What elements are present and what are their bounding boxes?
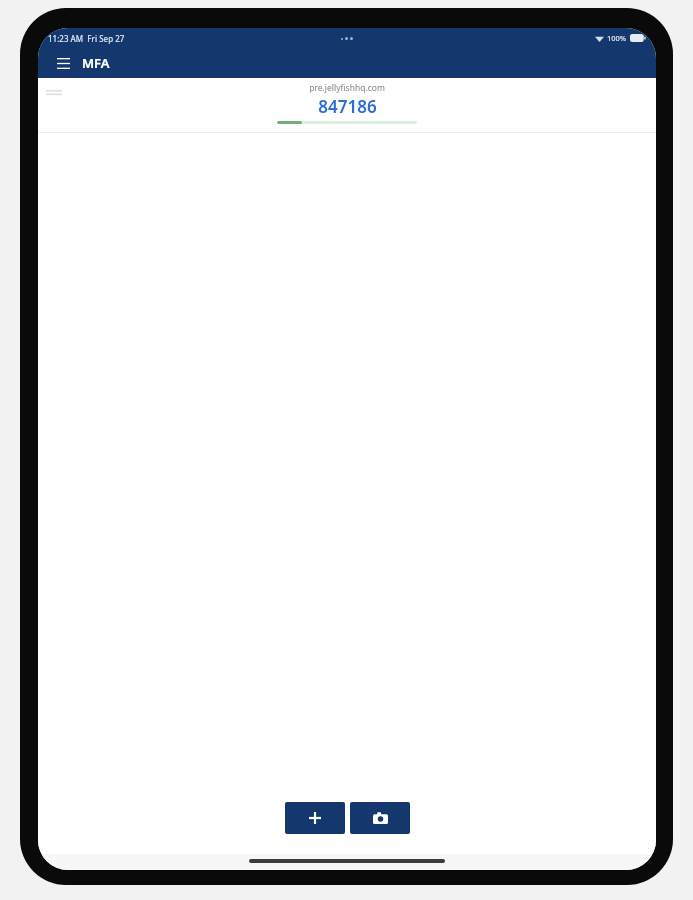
staticText: MFA <box>82 54 110 72</box>
button[interactable]: Scan QR code with camera <box>350 802 410 834</box>
staticText: 11:23 AM Fri Sep 27 <box>48 33 125 44</box>
staticText: pre.jellyfishhq.com <box>309 82 385 94</box>
other: Reorder <box>46 88 62 97</box>
staticText: 100% <box>607 33 627 43</box>
staticText: 847186 <box>318 95 377 118</box>
button[interactable]: Reorder <box>38 78 656 132</box>
button[interactable]: Add account <box>285 802 345 834</box>
button[interactable]: Open navigation menu <box>50 50 76 76</box>
